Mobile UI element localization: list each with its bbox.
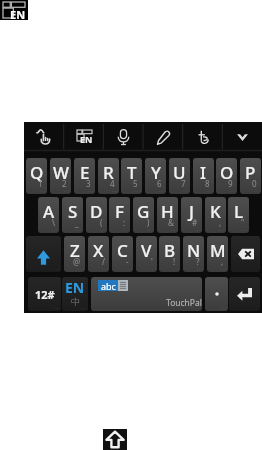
staticText: EN (65, 278, 85, 297)
staticText: I (200, 161, 207, 184)
staticText: Z (70, 239, 80, 262)
button[interactable]: M (207, 236, 228, 272)
button[interactable]: F (109, 197, 130, 233)
button[interactable]: Z (64, 236, 85, 272)
staticText: H (161, 200, 174, 223)
button[interactable]: Enter (229, 277, 260, 311)
staticText: & (168, 217, 174, 228)
button[interactable]: I (193, 158, 214, 194)
staticText: Q (30, 161, 44, 184)
button[interactable]: E (74, 158, 95, 194)
staticText: C (117, 239, 128, 262)
staticText: M (210, 239, 226, 262)
staticText: F (115, 200, 124, 223)
staticText: 5 (133, 178, 138, 189)
button[interactable]: L (228, 197, 249, 233)
button[interactable]: W (50, 158, 71, 194)
staticText: - (126, 256, 129, 267)
staticText: G (137, 200, 150, 223)
staticText: 8 (205, 178, 210, 189)
button[interactable]: H (157, 197, 178, 233)
button[interactable]: N (183, 236, 204, 272)
staticText: 3 (86, 178, 91, 189)
button[interactable]: Keyboard layout (64, 122, 104, 152)
staticText: TouchPal (166, 297, 202, 309)
staticText: D (90, 200, 103, 223)
staticText: T (127, 161, 137, 184)
staticText: K (210, 200, 221, 223)
staticText: EN (10, 7, 26, 22)
staticText: ' (151, 256, 153, 267)
button[interactable]: Y (145, 158, 166, 194)
staticText: 中 (71, 296, 80, 307)
staticText: EN (80, 133, 93, 145)
button[interactable]: T (121, 158, 142, 194)
staticText: @ (73, 256, 81, 267)
staticText: Y (151, 161, 161, 184)
staticText: 4 (110, 178, 115, 189)
button[interactable]: Hide keyboard (222, 122, 262, 152)
staticText: P (245, 161, 256, 184)
staticText: / (102, 256, 105, 267)
staticText: E (80, 161, 90, 184)
button[interactable]: Handwriting (143, 122, 183, 152)
button[interactable]: Q (26, 158, 47, 194)
button[interactable]: P (240, 158, 261, 194)
button[interactable]: Gesture input (24, 122, 64, 152)
button[interactable]: B (159, 236, 180, 272)
staticText: 1 (38, 178, 43, 189)
staticText: R (103, 161, 114, 184)
button[interactable]: Switch language (62, 277, 88, 311)
button[interactable] (205, 277, 228, 311)
button[interactable]: C (112, 236, 133, 272)
staticText: V (141, 239, 152, 262)
staticText: _ (75, 217, 79, 228)
staticText: 9 (228, 178, 233, 189)
button[interactable]: Voice input (103, 122, 143, 152)
button[interactable]: V (136, 236, 157, 272)
staticText: S (68, 200, 78, 223)
staticText: , (221, 256, 224, 267)
staticText: 7 (181, 178, 186, 189)
button[interactable]: R (98, 158, 119, 194)
staticText: W (53, 161, 69, 184)
staticText: 12# (35, 287, 55, 302)
staticText: ? (196, 256, 200, 267)
button[interactable]: G (133, 197, 154, 233)
staticText: : (123, 217, 126, 228)
staticText: , (219, 217, 222, 228)
button[interactable]: Backspace (231, 236, 260, 272)
staticText: " (241, 217, 245, 228)
button[interactable]: A (38, 197, 59, 233)
button[interactable]: D (86, 197, 107, 233)
staticText: 0 (252, 178, 257, 189)
button[interactable]: abc (91, 277, 202, 311)
staticText: U (173, 161, 186, 184)
staticText: O (220, 161, 234, 184)
staticText: N (187, 239, 201, 262)
staticText: abc (101, 280, 116, 291)
staticText: \ (52, 217, 55, 228)
staticText: B (164, 239, 176, 262)
button[interactable]: J (181, 197, 202, 233)
button[interactable]: Shift (26, 236, 61, 272)
button[interactable]: 12# (28, 277, 61, 311)
staticText: X (93, 239, 104, 262)
staticText: 6 (157, 178, 162, 189)
button[interactable]: X (88, 236, 109, 272)
staticText: ! (173, 256, 176, 267)
staticText: ( (100, 217, 103, 228)
staticText: A (43, 200, 55, 223)
button[interactable]: O (216, 158, 237, 194)
staticText: L (234, 200, 244, 223)
staticText: J (189, 200, 194, 223)
button[interactable]: K (205, 197, 226, 233)
button[interactable]: U (169, 158, 190, 194)
staticText: 2 (62, 178, 67, 189)
button[interactable]: S (62, 197, 83, 233)
button[interactable]: Twitter (183, 122, 223, 152)
staticText: ) (147, 217, 150, 228)
staticText: # (192, 217, 198, 228)
